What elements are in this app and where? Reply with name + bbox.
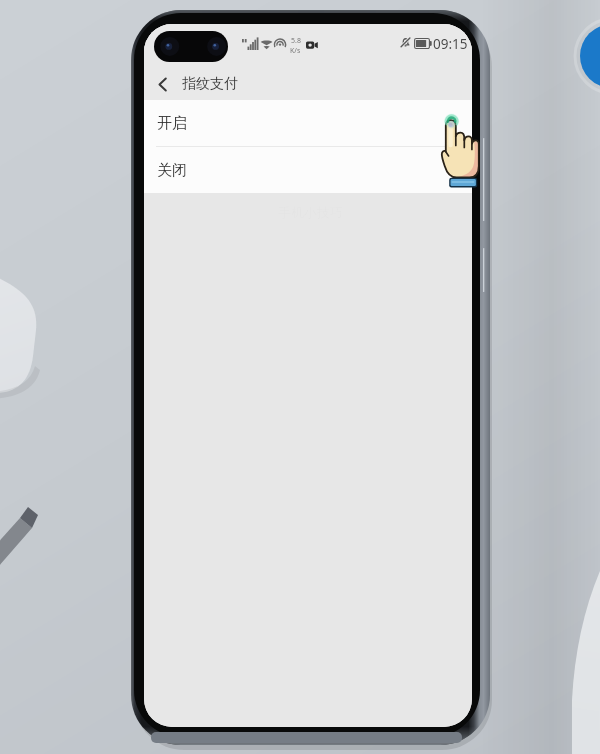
staticText: 5.8 [291, 36, 301, 46]
staticText: 开启 [157, 114, 187, 133]
button[interactable]: 关闭 [144, 147, 472, 193]
staticText: 关闭 [157, 161, 187, 180]
staticText: 09:15 [433, 35, 468, 53]
button[interactable]: 开启 [144, 100, 472, 146]
staticText: K/s [290, 46, 301, 56]
staticText: 指纹支付 [182, 75, 238, 93]
button[interactable]: 返回 [150, 72, 174, 96]
